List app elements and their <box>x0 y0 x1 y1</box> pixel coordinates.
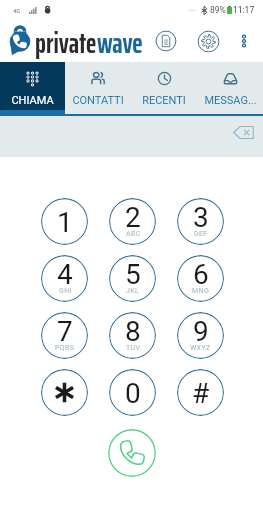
staticText: PQRS <box>55 344 75 352</box>
button[interactable]: More options <box>234 31 254 51</box>
button[interactable]: 4 <box>41 255 88 302</box>
staticText: 2 <box>125 201 141 234</box>
staticText: 11:17 <box>233 5 255 15</box>
staticText: wave <box>97 21 143 63</box>
staticText: 89% <box>210 5 226 15</box>
staticText: MNO <box>192 287 210 295</box>
button[interactable]: 7 <box>41 312 88 359</box>
staticText: 3 <box>193 201 209 234</box>
staticText: 0 <box>125 377 141 410</box>
staticText: RECENTI <box>142 94 186 107</box>
staticText: 9 <box>193 315 209 348</box>
button[interactable]: 9 <box>177 312 224 359</box>
staticText: GHI <box>59 287 72 295</box>
staticText: ··· <box>189 6 196 15</box>
button[interactable] <box>41 369 88 416</box>
staticText: WXYZ <box>190 344 211 352</box>
button[interactable]: Documents <box>155 30 177 52</box>
button[interactable]: 6 <box>177 255 224 302</box>
button[interactable]: 1 <box>41 198 88 245</box>
button[interactable]: 3 <box>177 198 224 245</box>
staticText: TUV <box>126 344 141 352</box>
staticText: 6 <box>193 258 209 291</box>
button[interactable]: Backspace <box>233 125 255 140</box>
button[interactable]: Settings <box>197 30 220 53</box>
button[interactable]: RECENTI <box>131 62 197 116</box>
staticText: JKL <box>126 287 140 295</box>
button[interactable]: CHIAMA <box>0 62 65 116</box>
staticText: private <box>35 21 97 63</box>
button[interactable]: 2 <box>109 198 156 245</box>
staticText: ABC <box>126 230 141 238</box>
staticText: 4G <box>13 7 21 14</box>
staticText: 8 <box>125 315 141 348</box>
button[interactable]: CONTATTI <box>65 62 131 116</box>
button[interactable]: 5 <box>109 255 156 302</box>
staticText: 4 <box>57 258 73 291</box>
button[interactable]: 0 <box>109 369 156 416</box>
staticText: 1 <box>57 206 73 239</box>
staticText: 7 <box>57 315 73 348</box>
button[interactable]: Call <box>108 429 156 477</box>
staticText: # <box>192 377 210 410</box>
button[interactable]: 8 <box>109 312 156 359</box>
staticText: DEF <box>194 230 208 238</box>
staticText: CONTATTI <box>72 94 124 107</box>
staticText: 5 <box>125 258 141 291</box>
button[interactable]: # <box>177 369 224 416</box>
staticText: CHIAMA <box>11 94 54 107</box>
staticText: MESSAG... <box>204 94 257 107</box>
button[interactable]: MESSAG... <box>197 62 263 116</box>
